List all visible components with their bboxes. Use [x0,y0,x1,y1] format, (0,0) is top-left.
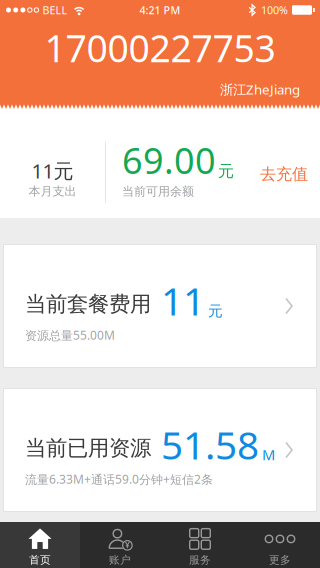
staticText: 本月支出 [28,184,76,199]
staticText: 当前套餐费用 [25,291,151,317]
staticText: 流量6.33M+通话59.0分钟+短信2条 [25,471,213,487]
button[interactable]: 当前已用资源 [0,388,320,512]
staticText: 69.00 [122,136,216,184]
button[interactable]: 当前套餐费用 [0,244,320,368]
staticText: 首页 [29,553,51,566]
staticText: 4:21 PM [139,3,180,17]
staticText: 元 [208,302,223,320]
button[interactable]: 首页 [0,522,80,568]
staticText: 51.58 [161,419,259,470]
staticText: 去充值 [260,164,308,184]
staticText: 更多 [269,553,291,566]
staticText: 100% [261,3,288,17]
staticText: 当前可用余额 [122,184,194,199]
staticText: M [262,445,275,464]
staticText: 服务 [189,553,211,566]
staticText: 当前已用资源 [25,435,151,461]
staticText: 浙江ZheJiang [220,80,300,98]
button[interactable]: 服务 [160,522,240,568]
button[interactable]: 更多 [240,522,320,568]
staticText: 11元 [31,157,73,184]
button[interactable]: 去充值 [260,164,308,184]
staticText: BELL [43,3,68,17]
staticText: 元 [218,161,234,181]
staticText: 账户 [109,553,131,566]
staticText: 17000227753 [44,23,275,72]
staticText: 11 [161,275,205,326]
button[interactable]: 账户 [80,522,160,568]
staticText: 资源总量55.00M [25,327,115,343]
